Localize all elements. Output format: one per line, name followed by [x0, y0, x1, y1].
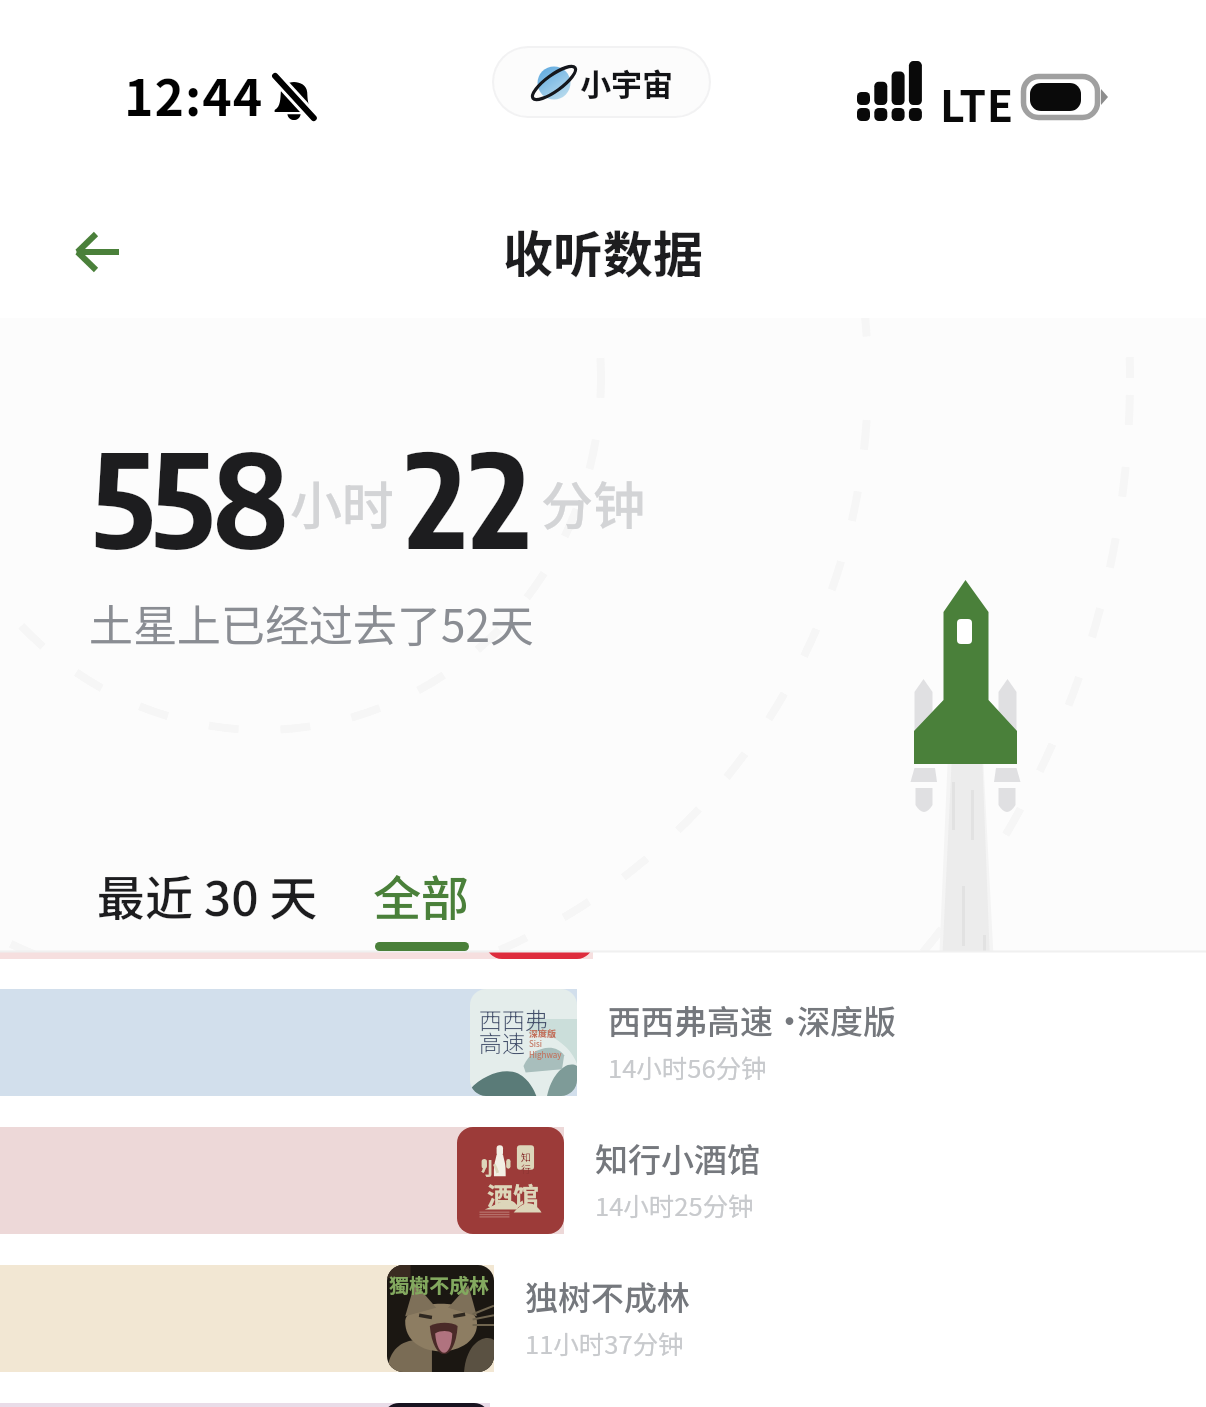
- staticText: 小: [481, 1154, 499, 1180]
- staticText: 12:44: [124, 58, 264, 130]
- staticText: 小宇宙: [580, 60, 673, 105]
- staticText: 收听数据: [503, 215, 703, 287]
- staticText: 分钟: [541, 465, 646, 540]
- staticText: 22: [406, 415, 534, 577]
- staticText: 最近 30 天: [97, 860, 318, 930]
- staticText: Sisi Highway: [529, 1038, 562, 1060]
- staticText: 14小时25分钟: [595, 1186, 754, 1223]
- staticText: 独树不成林: [525, 1272, 690, 1320]
- staticText: 全部: [373, 860, 470, 930]
- staticText: 土星上已经过去了52天: [89, 591, 534, 655]
- staticText: 西西弗高速·深度版: [608, 996, 896, 1044]
- button[interactable]: 最近 30 天: [94, 856, 321, 934]
- staticText: 11小时37分钟: [525, 1324, 684, 1361]
- button[interactable]: Back: [51, 206, 143, 298]
- staticText: 知行小酒馆: [595, 1134, 760, 1182]
- button[interactable]: 西西弗: [0, 989, 1206, 1096]
- staticText: 知 行: [521, 1149, 531, 1175]
- button[interactable]: 小宇宙: [494, 48, 709, 116]
- staticText: 高速: [479, 1025, 525, 1058]
- staticText: 酒馆: [487, 1176, 540, 1214]
- button[interactable]: 酒馆: [0, 1127, 1206, 1234]
- staticText: 深度版: [529, 1027, 557, 1040]
- staticText: 14小时56分钟: [608, 1048, 767, 1085]
- staticText: LTE: [940, 72, 1014, 134]
- staticText: 西西弗: [479, 1002, 548, 1035]
- staticText: 獨樹不成林: [389, 1270, 489, 1299]
- staticText: 558: [92, 415, 287, 577]
- button[interactable]: 不在场: [0, 1403, 1206, 1407]
- button[interactable]: 全部: [370, 856, 473, 955]
- button[interactable]: 獨樹不成林: [0, 1265, 1206, 1372]
- staticText: 小时: [290, 465, 395, 540]
